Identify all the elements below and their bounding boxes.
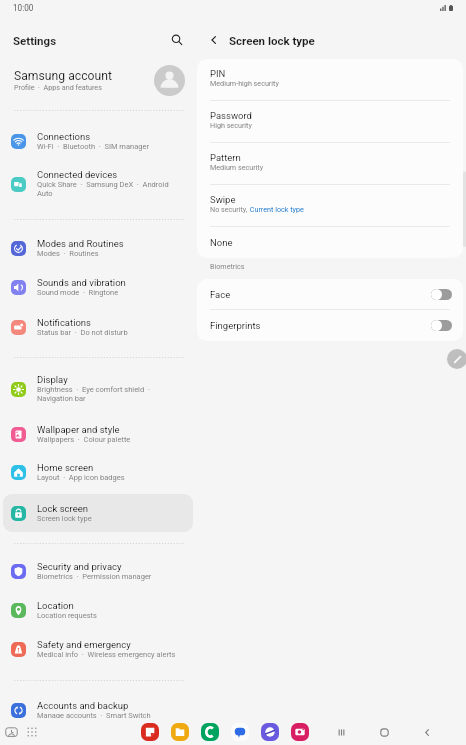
- button[interactable]: All apps: [26, 726, 38, 738]
- staticText: Manage accounts · Smart Switch: [37, 711, 151, 720]
- staticText: Wi-Fi · Bluetooth · SIM manager: [37, 142, 149, 151]
- staticText: Location: [37, 600, 74, 611]
- staticText: Fingerprints: [210, 320, 261, 331]
- staticText: Biometrics · Permission manager: [37, 572, 152, 581]
- button[interactable]: Search: [166, 29, 188, 51]
- button[interactable]: Lock screen: [3, 494, 193, 532]
- button[interactable]: Accounts and backup: [3, 691, 193, 729]
- button[interactable]: Swipe: [197, 185, 463, 227]
- staticText: Home screen: [37, 462, 94, 473]
- staticText: High security: [210, 121, 252, 129]
- staticText: Modes · Routines: [37, 249, 99, 258]
- staticText: Medical info · Wireless emergency alerts: [37, 650, 176, 659]
- button[interactable]: Home: [375, 723, 393, 741]
- button[interactable]: Face: [197, 279, 463, 310]
- button[interactable]: My Files: [171, 723, 189, 741]
- button[interactable]: Password: [197, 101, 463, 143]
- staticText: Safety and emergency: [37, 639, 131, 650]
- staticText: Password: [210, 110, 252, 121]
- staticText: Notifications: [37, 317, 92, 328]
- button[interactable]: Recents: [332, 723, 350, 741]
- staticText: Medium-high security: [210, 79, 279, 87]
- button[interactable]: Samsung Notes: [141, 723, 159, 741]
- button[interactable]: Pattern: [197, 143, 463, 185]
- staticText: PIN: [210, 68, 226, 79]
- staticText: Lock screen: [37, 503, 89, 514]
- button[interactable]: Phone: [201, 723, 219, 741]
- staticText: Current lock type: [248, 205, 304, 213]
- button[interactable]: Back: [203, 29, 225, 51]
- staticText: Display: [37, 374, 68, 385]
- button[interactable]: Security and privacy: [3, 552, 193, 590]
- staticText: No security,: [210, 205, 248, 213]
- button[interactable]: Location: [3, 591, 193, 629]
- staticText: Connections: [37, 131, 91, 142]
- staticText: Navigation bar: [37, 394, 86, 403]
- button[interactable]: Connections: [3, 122, 193, 160]
- button[interactable]: Home screen: [3, 453, 193, 491]
- staticText: Wallpapers · Colour palette: [37, 435, 131, 444]
- staticText: Security and privacy: [37, 561, 122, 572]
- staticText: Layout · App icon badges: [37, 473, 125, 482]
- button[interactable]: PIN: [197, 59, 463, 101]
- staticText: Profile · Apps and features: [14, 83, 102, 91]
- staticText: Medium security: [210, 163, 264, 171]
- staticText: Swipe: [210, 194, 236, 205]
- staticText: Pattern: [210, 152, 241, 163]
- button[interactable]: Notifications: [3, 308, 193, 346]
- button[interactable]: Wallpaper and style: [3, 415, 193, 453]
- staticText: Brightness · Eye comfort shield ·: [37, 385, 150, 394]
- staticText: Quick Share · Samsung DeX · Android: [37, 180, 169, 189]
- staticText: Screen lock type: [229, 34, 315, 47]
- button[interactable]: Recent apps: [4, 725, 18, 739]
- staticText: Accounts and backup: [37, 700, 129, 711]
- button[interactable]: Safety and emergency: [3, 630, 193, 668]
- staticText: Location requests: [37, 611, 97, 620]
- staticText: 10:00: [13, 3, 34, 13]
- staticText: Connected devices: [37, 169, 118, 180]
- button[interactable]: Connected devices: [3, 165, 193, 203]
- staticText: None: [210, 237, 233, 248]
- staticText: Modes and Routines: [37, 238, 124, 249]
- button[interactable]: Messages: [231, 723, 249, 741]
- staticText: Sound mode · Ringtone: [37, 288, 119, 297]
- button[interactable]: None: [197, 227, 463, 258]
- staticText: Auto: [37, 189, 53, 198]
- button[interactable]: Internet: [261, 723, 279, 741]
- button[interactable]: Toggle Face: [431, 289, 452, 300]
- button[interactable]: Modes and Routines: [3, 229, 193, 267]
- staticText: Settings: [13, 34, 57, 47]
- staticText: Screen lock type: [37, 514, 92, 523]
- button[interactable]: Samsung account: [0, 62, 196, 98]
- staticText: Biometrics: [210, 262, 245, 270]
- staticText: Status bar · Do not disturb: [37, 328, 128, 337]
- button[interactable]: Sounds and vibration: [3, 268, 193, 306]
- button[interactable]: Back: [418, 723, 436, 741]
- staticText: Samsung account: [14, 69, 112, 83]
- staticText: Face: [210, 289, 231, 300]
- button[interactable]: Fingerprints: [197, 310, 463, 341]
- staticText: Wallpaper and style: [37, 424, 120, 435]
- button[interactable]: Display: [3, 370, 193, 408]
- button[interactable]: Toggle Fingerprints: [431, 320, 452, 331]
- button[interactable]: Camera: [291, 723, 309, 741]
- staticText: Sounds and vibration: [37, 277, 126, 288]
- button[interactable]: Edit: [447, 349, 466, 369]
